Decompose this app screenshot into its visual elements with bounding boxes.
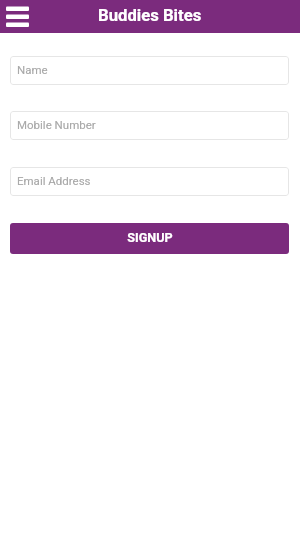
staticText: Email Address [17, 174, 91, 187]
button[interactable]: SIGNUP [10, 223, 289, 254]
staticText: Name [17, 63, 48, 76]
button[interactable]: Mobile Number [10, 111, 289, 140]
staticText: SIGNUP [127, 230, 173, 245]
staticText: Buddies Bites [98, 6, 202, 26]
staticText: Mobile Number [17, 118, 96, 131]
button[interactable]: Name [10, 56, 289, 85]
button[interactable]: Open navigation menu [1, 2, 34, 31]
button[interactable]: Email Address [10, 167, 289, 196]
